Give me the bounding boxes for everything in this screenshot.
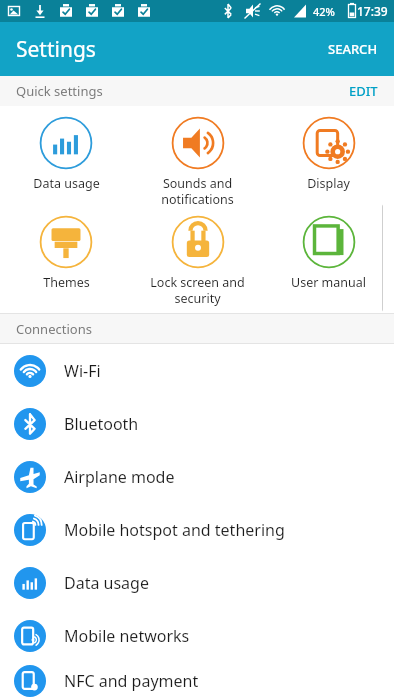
button[interactable]: Display — [263, 112, 394, 196]
staticText: 42% — [313, 4, 335, 19]
staticText: Data usage — [64, 572, 149, 594]
staticText: Lock screen and security — [150, 274, 245, 306]
button[interactable]: Bluetooth — [0, 397, 394, 450]
button[interactable]: Lock screen and security — [132, 211, 263, 310]
staticText: NFC and payment — [64, 670, 199, 692]
staticText: Mobile networks — [64, 625, 190, 647]
staticText: Airplane mode — [64, 466, 175, 488]
button[interactable]: SEARCH — [312, 28, 394, 70]
staticText: Quick settings — [16, 82, 103, 100]
button[interactable]: Wi-Fi — [0, 344, 394, 397]
button[interactable]: EDIT — [333, 76, 394, 106]
button[interactable]: Airplane mode — [0, 450, 394, 503]
staticText: User manual — [291, 274, 366, 291]
staticText: SEARCH — [328, 40, 378, 58]
staticText: Sounds and notifications — [161, 175, 234, 207]
staticText: EDIT — [349, 82, 378, 100]
button[interactable]: Sounds and notifications — [132, 112, 263, 211]
staticText: Wi-Fi — [64, 360, 101, 382]
button[interactable]: Mobile networks — [0, 609, 394, 662]
staticText: Data usage — [33, 175, 100, 192]
staticText: Connections — [16, 320, 92, 338]
staticText: Themes — [43, 274, 90, 291]
staticText: 17:39 — [357, 3, 388, 19]
button[interactable]: User manual — [263, 211, 394, 295]
button[interactable]: Data usage — [0, 556, 394, 609]
staticText: Mobile hotspot and tethering — [64, 519, 285, 541]
button[interactable]: Mobile hotspot and tethering — [0, 503, 394, 556]
staticText: Display — [307, 175, 350, 192]
staticText: Bluetooth — [64, 413, 139, 435]
button[interactable]: NFC and payment — [0, 662, 394, 700]
button[interactable]: Data usage — [0, 112, 132, 196]
button[interactable]: Themes — [0, 211, 132, 295]
staticText: Settings — [16, 35, 96, 64]
